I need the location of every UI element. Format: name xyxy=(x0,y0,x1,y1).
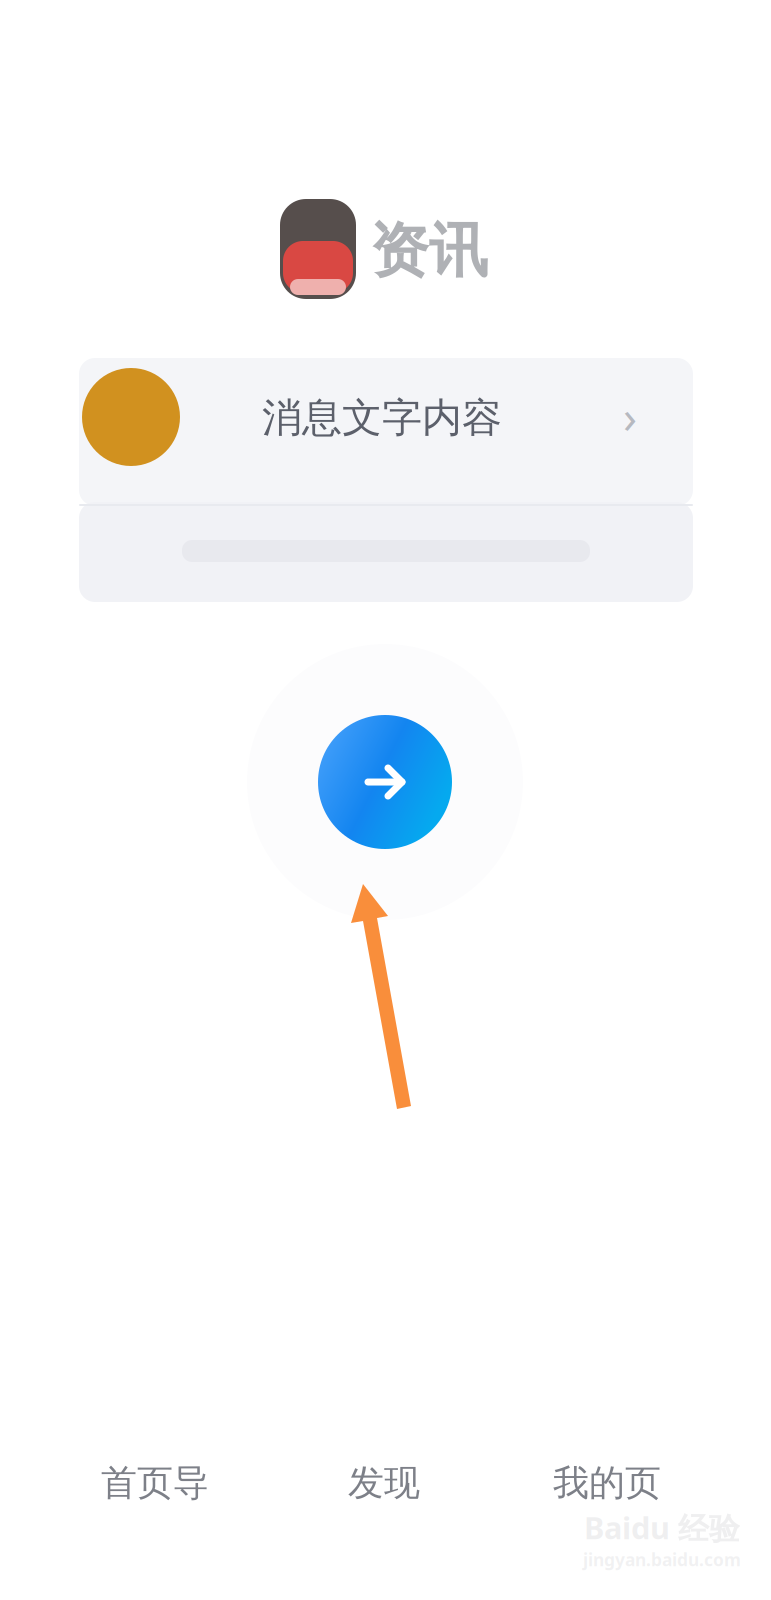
button[interactable]: Next xyxy=(318,715,452,849)
staticText: 我的页 xyxy=(553,1461,661,1505)
button[interactable]: 我的页 xyxy=(507,1451,707,1515)
staticText: › xyxy=(623,386,637,446)
button[interactable]: 首页导 xyxy=(55,1451,255,1515)
staticText: 首页导 xyxy=(101,1461,209,1505)
staticText: 发现 xyxy=(348,1461,420,1505)
button[interactable]: 发现 xyxy=(304,1451,464,1515)
staticText: 资讯 xyxy=(370,215,488,287)
staticText: Baidu 经验 xyxy=(584,1507,740,1548)
staticText: 消息文字内容 xyxy=(262,393,502,442)
staticText: jingyan.baidu.com xyxy=(583,1548,741,1571)
button[interactable]: 消息文字内容 xyxy=(0,0,771,1600)
